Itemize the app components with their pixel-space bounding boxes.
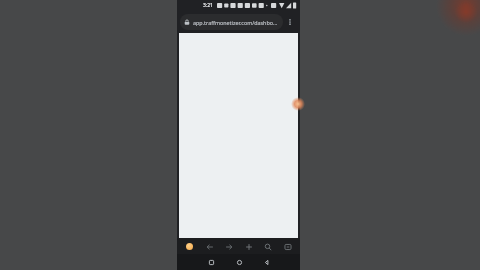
button[interactable]: Forward [222, 240, 235, 253]
button[interactable]: Search [261, 240, 274, 253]
button[interactable]: Account [183, 240, 196, 253]
button[interactable]: Back [259, 255, 273, 269]
button[interactable]: Tabs [281, 240, 294, 253]
button[interactable]: app.traffmonetizer.com/dashboard [180, 14, 283, 30]
button[interactable]: Back [203, 240, 216, 253]
staticText: app.traffmonetizer.com/dashboard [193, 19, 279, 26]
staticText: 3:21 [203, 2, 213, 9]
button[interactable]: Home [232, 255, 246, 269]
button[interactable]: New tab [242, 240, 255, 253]
button[interactable]: More options [283, 15, 297, 29]
button[interactable]: Recent apps [204, 255, 218, 269]
